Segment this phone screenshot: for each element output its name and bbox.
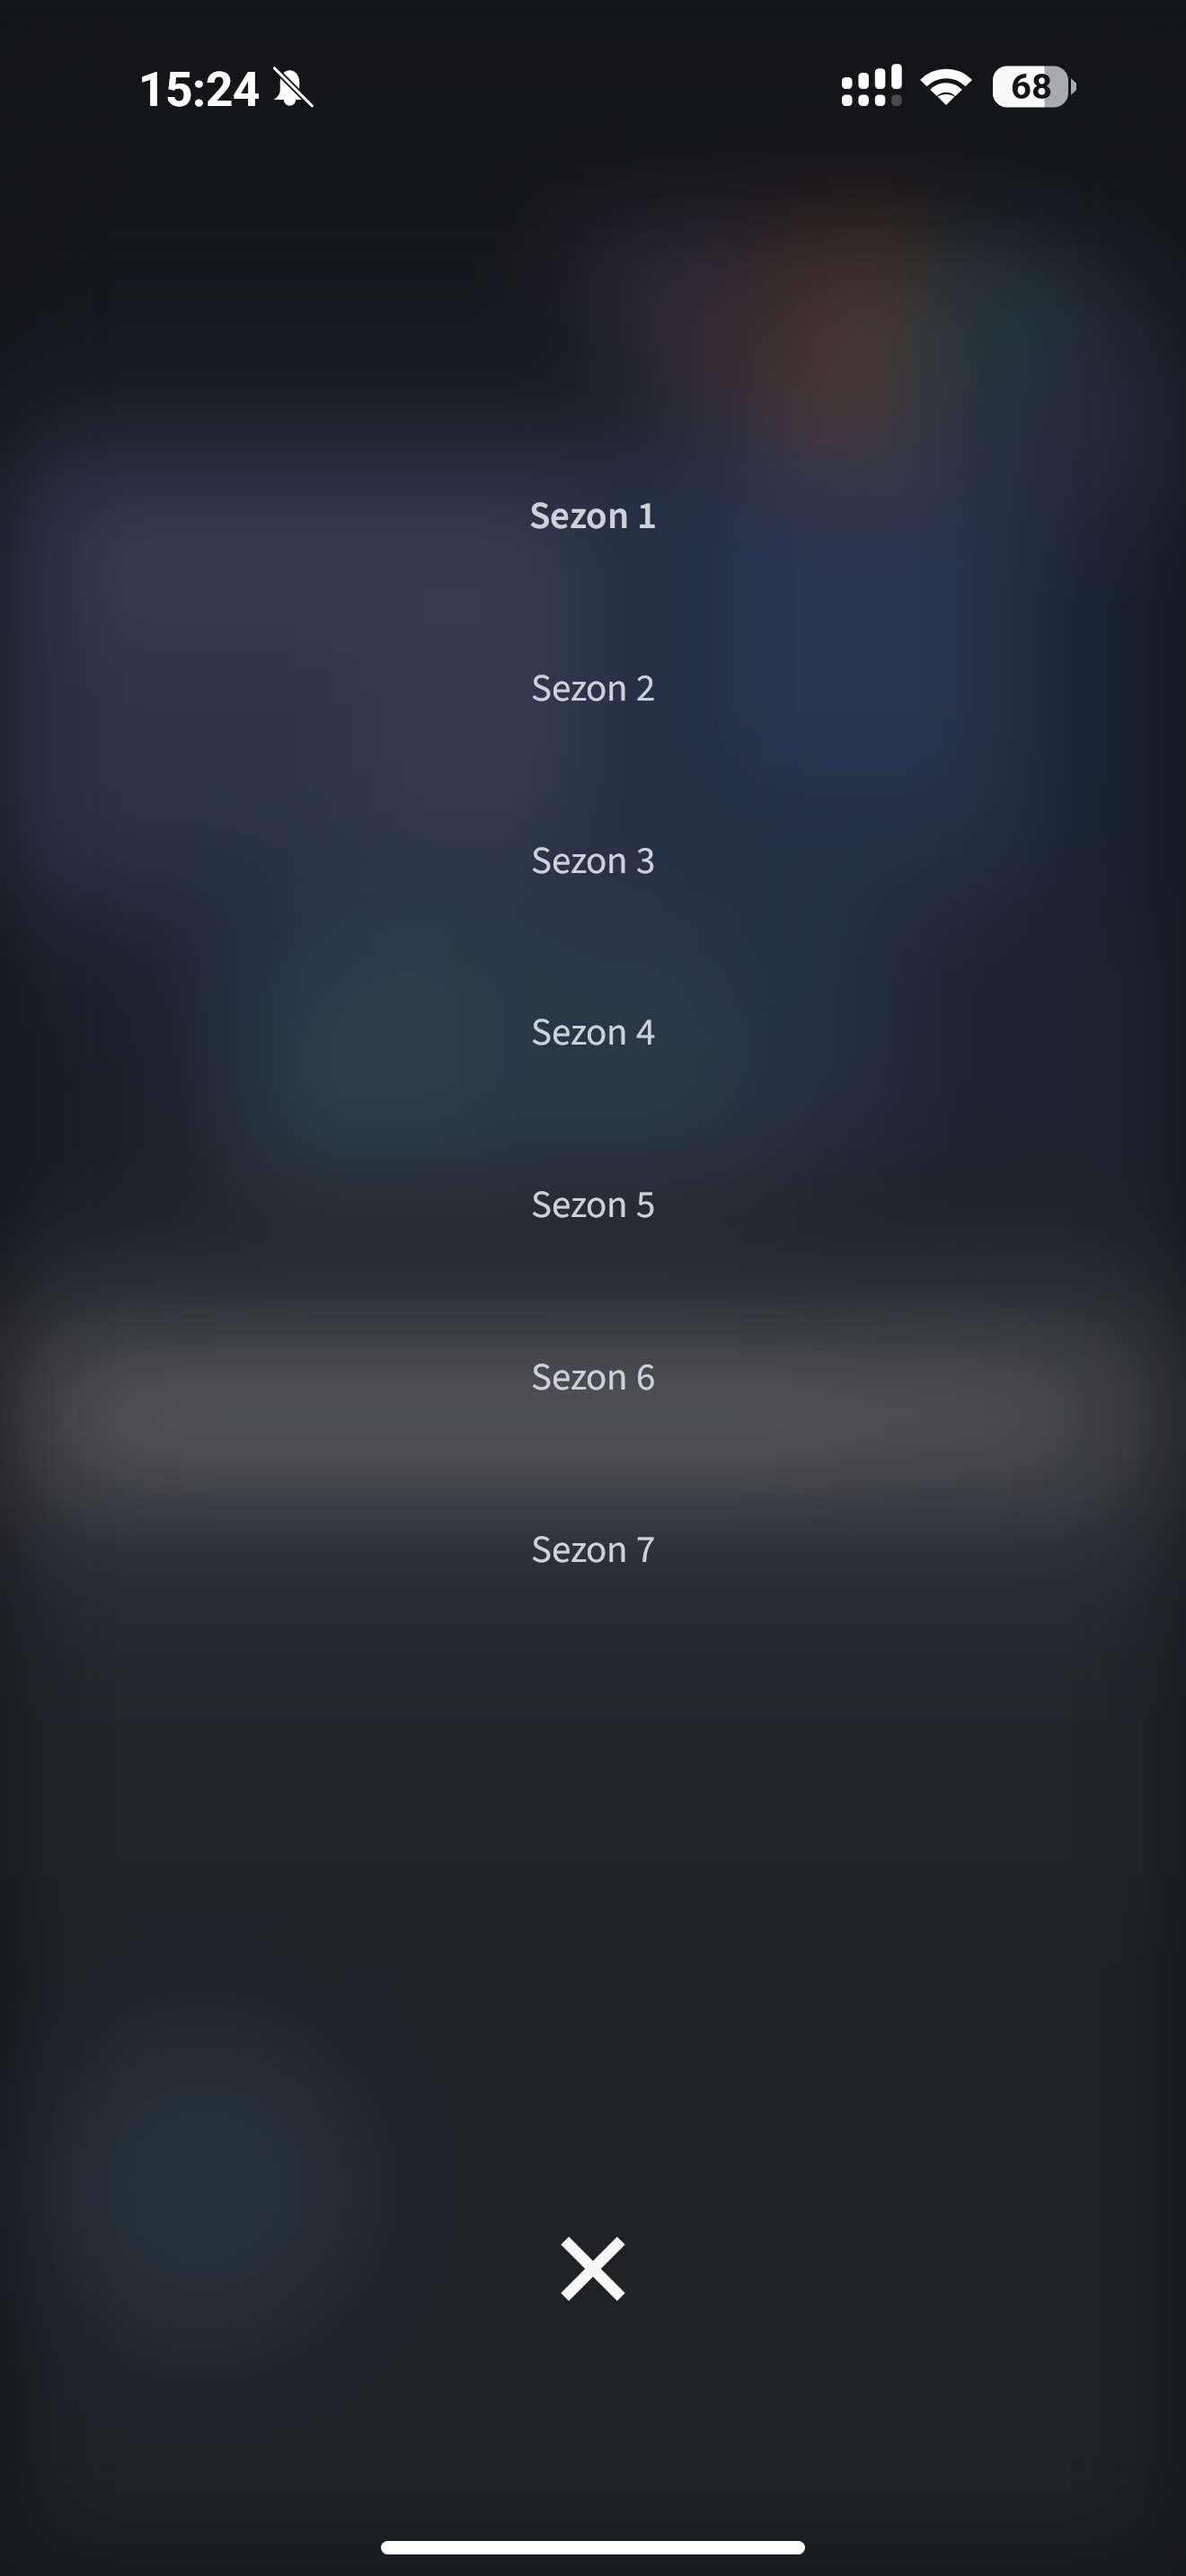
button[interactable]: Close — [526, 2201, 660, 2336]
button[interactable] — [0, 964, 1186, 1098]
button[interactable] — [0, 1136, 1186, 1271]
button[interactable] — [0, 1481, 1186, 1616]
button[interactable] — [0, 792, 1186, 927]
button[interactable] — [0, 447, 1186, 582]
button[interactable] — [0, 620, 1186, 754]
button[interactable] — [0, 1309, 1186, 1443]
